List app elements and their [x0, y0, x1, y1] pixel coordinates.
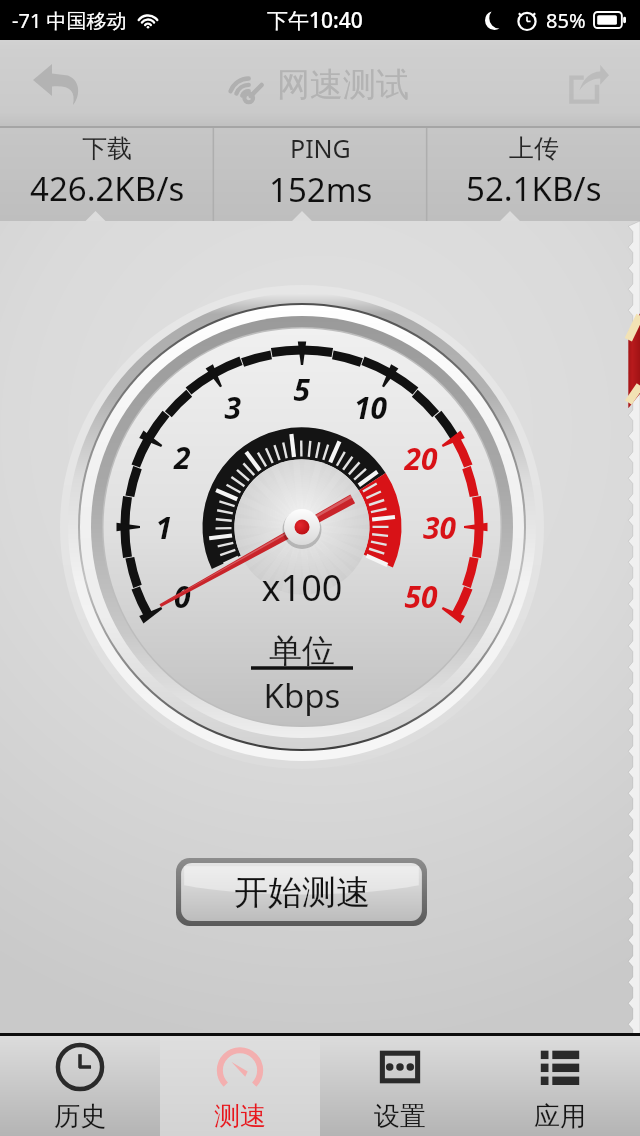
staticText: 52.1KB/s	[466, 166, 602, 211]
button[interactable]: 测速	[160, 1036, 320, 1136]
staticText: PING	[290, 131, 351, 165]
button[interactable]: 设置	[320, 1036, 480, 1136]
button[interactable]: Share	[554, 49, 624, 119]
staticText: 上传	[509, 133, 559, 164]
staticText: 下午10:40	[267, 6, 363, 35]
staticText: 历史	[54, 1100, 106, 1133]
button[interactable]: Back	[22, 49, 92, 119]
staticText: 152ms	[269, 167, 373, 212]
button[interactable]: 应用	[480, 1036, 640, 1136]
staticText: 应用	[534, 1100, 586, 1133]
button[interactable]: 开始测速	[176, 858, 427, 926]
staticText: 开始测速	[234, 871, 370, 914]
staticText: 测速	[214, 1100, 266, 1133]
staticText: 网速测试	[277, 64, 409, 106]
button[interactable]: 历史	[0, 1036, 160, 1136]
staticText: -71 中国移动	[12, 7, 127, 34]
staticText: 下载	[82, 133, 132, 164]
staticText: 设置	[374, 1100, 426, 1133]
staticText: 85%	[546, 7, 586, 34]
staticText: 426.2KB/s	[30, 166, 185, 211]
